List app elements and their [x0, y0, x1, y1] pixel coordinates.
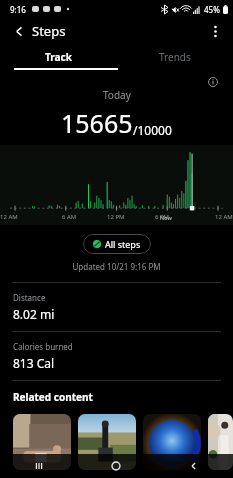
staticText: 12 AM: [215, 213, 233, 221]
staticText: 15665: [61, 106, 133, 140]
button[interactable]: Related content item: [78, 414, 136, 470]
staticText: All steps: [105, 238, 141, 250]
button[interactable]: Trends: [116, 44, 233, 70]
button[interactable]: Related content item: [143, 414, 201, 470]
staticText: 813 Cal: [13, 355, 55, 371]
button[interactable]: More options: [204, 20, 226, 42]
staticText: Steps: [32, 22, 66, 40]
button[interactable]: Back: [155, 454, 233, 478]
button[interactable]: Distance: [0, 283, 233, 331]
staticText: Distance: [13, 292, 46, 303]
staticText: 8.02 mi: [13, 306, 55, 322]
staticText: Updated 10/21 9:16 PM: [0, 261, 233, 272]
staticText: Track: [45, 50, 72, 64]
button[interactable]: Home: [77, 454, 155, 478]
staticText: Calories burned: [13, 341, 73, 352]
staticText: Related content: [13, 390, 93, 404]
button[interactable]: Back: [8, 20, 30, 42]
staticText: Now: [160, 214, 172, 221]
staticText: 6 AM: [62, 213, 77, 221]
button[interactable]: Calories burned: [0, 332, 233, 380]
button[interactable]: Related content item: [13, 414, 71, 470]
button[interactable]: Information: [206, 75, 220, 89]
button[interactable]: Recent apps: [0, 454, 77, 478]
staticText: /10000: [133, 122, 172, 138]
staticText: Today: [103, 88, 131, 102]
staticText: Trends: [159, 50, 191, 64]
staticText: 45%: [204, 4, 220, 15]
staticText: 6 PM: [155, 213, 170, 221]
button[interactable]: Related content item: [208, 414, 233, 470]
button[interactable]: All steps: [83, 234, 151, 254]
staticText: 12 PM: [107, 213, 125, 221]
staticText: 9:16: [10, 4, 26, 15]
staticText: 12 AM: [0, 213, 18, 221]
button[interactable]: Track: [0, 44, 116, 70]
